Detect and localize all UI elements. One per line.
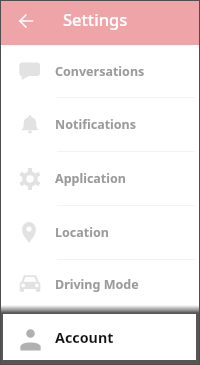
button[interactable]: Conversations [0, 45, 200, 97]
staticText: Account [55, 328, 114, 347]
button[interactable]: Driving Mode [0, 260, 200, 309]
staticText: Notifications [55, 116, 137, 133]
staticText: Location [55, 224, 109, 241]
button[interactable]: Location [0, 206, 200, 259]
staticText: Driving Mode [55, 276, 139, 293]
button[interactable]: Back [12, 7, 40, 35]
button[interactable]: Account [0, 305, 200, 365]
staticText: Conversations [55, 63, 145, 80]
button[interactable]: Notifications [0, 98, 200, 151]
staticText: Application [55, 170, 126, 187]
button[interactable]: Application [0, 152, 200, 205]
staticText: Settings [63, 8, 128, 30]
